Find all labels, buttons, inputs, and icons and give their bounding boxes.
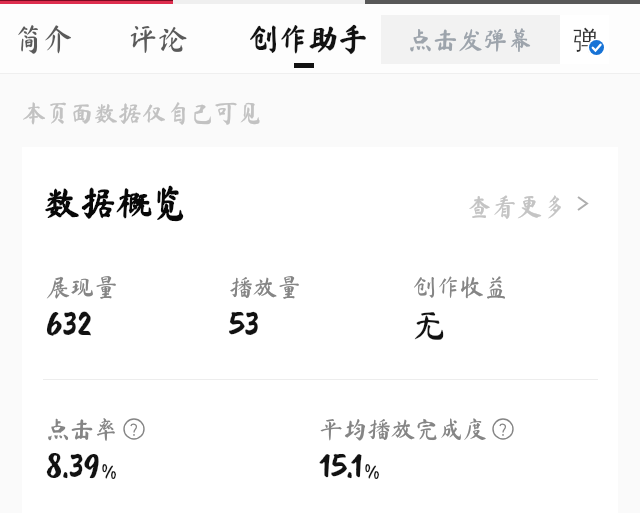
staticText: 简介 <box>13 24 73 54</box>
staticText: 创作助手 <box>248 24 368 54</box>
button[interactable]: 创作助手 <box>240 12 375 72</box>
button[interactable]: 简介 <box>0 16 85 62</box>
staticText: % <box>364 459 381 484</box>
staticText: 数据概览 <box>44 184 189 220</box>
staticText: 弹 <box>573 24 599 57</box>
staticText: 无 <box>412 308 446 342</box>
staticText: 播放量 <box>229 275 301 299</box>
staticText: 点击发弹幕 <box>408 27 534 52</box>
staticText: % <box>101 459 118 484</box>
staticText: 平均播放完成度 <box>319 417 487 441</box>
staticText: 展现量 <box>46 275 118 299</box>
button[interactable]: 查看更多 <box>467 194 588 219</box>
staticText: 创作收益 <box>412 275 508 299</box>
button[interactable]: 发送弹幕 <box>560 15 609 64</box>
staticText: 8.39 <box>46 443 100 487</box>
staticText: 632 <box>46 301 92 345</box>
staticText: 15.1 <box>319 443 363 487</box>
staticText: 本页面数据仅自己可见 <box>22 101 262 125</box>
staticText: 评论 <box>128 24 188 54</box>
staticText: 查看更多 <box>467 194 568 219</box>
staticText: 点击率 <box>46 417 118 441</box>
staticText: 53 <box>229 301 260 345</box>
button[interactable]: 评论 <box>115 16 200 62</box>
button[interactable]: 点击发弹幕 <box>381 15 560 64</box>
